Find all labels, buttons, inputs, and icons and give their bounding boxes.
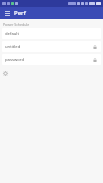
staticText: Power Schedule (3, 22, 30, 27)
button[interactable]: default (2, 28, 101, 39)
staticText: untitled (5, 44, 21, 50)
staticText: default (5, 31, 19, 37)
button[interactable]: Locked (91, 43, 98, 50)
button[interactable]: password (2, 54, 101, 65)
button[interactable]: Settings (2, 70, 9, 77)
staticText: password (5, 57, 24, 63)
button[interactable]: Locked (91, 56, 98, 63)
button[interactable]: Open navigation menu (3, 9, 11, 17)
button[interactable]: untitled (2, 41, 101, 52)
staticText: Perf (14, 9, 26, 17)
